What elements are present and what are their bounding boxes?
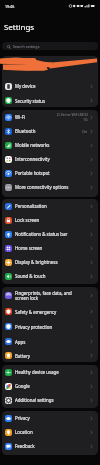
staticText: Lock screen [15,217,88,223]
button[interactable]: Safety & emergency [2,304,98,319]
staticText: Settings [4,22,35,33]
button[interactable]: Battery [2,348,98,362]
button[interactable]: Security status [2,93,98,107]
staticText: Safety & emergency [15,309,88,315]
staticText: Location [15,429,88,435]
button[interactable]: My device [2,79,98,93]
staticText: 1G [83,117,88,122]
staticText: Notifications & status bar [15,231,88,237]
staticText: Privacy [15,415,88,421]
button[interactable]: Lock screen [2,213,98,227]
staticText: Personalization [15,203,88,209]
button[interactable]: Privacy [2,411,98,425]
staticText: Fingerprints, face data, and screen lock [15,290,88,302]
staticText: My device [15,83,88,89]
button[interactable]: Location [2,425,98,439]
button[interactable]: Personalization [2,199,98,213]
staticText: Sound & touch [15,273,88,279]
staticText: Google [15,383,88,389]
staticText: Mobile networks [15,142,88,148]
button[interactable]: Sound & touch [2,269,98,283]
button[interactable]: Apps [2,334,98,349]
staticText: Interconnectivity [15,156,88,162]
button[interactable]: Google [2,379,98,393]
staticText: Battery [15,353,88,359]
button[interactable]: Fingerprints, face data, and screen lock [2,287,98,304]
button[interactable]: Notifications & status bar [2,227,98,241]
staticText: Additional settings [15,397,88,403]
staticText: Privacy protection [15,324,88,330]
button[interactable]: Search settings [2,42,98,50]
button[interactable] [2,56,98,79]
staticText: Display & brightness [15,259,88,265]
button[interactable]: Additional settings [2,393,98,407]
button[interactable]: Home screen [2,241,98,255]
button[interactable]: Interconnectivity [2,152,98,166]
staticText: Apps [15,339,88,345]
button[interactable]: Privacy protection [2,319,98,334]
staticText: D-Verne WiFi BE32 [57,112,88,117]
button[interactable]: Mobile networks [2,138,98,152]
staticText: 19:46 [5,4,15,9]
button[interactable]: Bluetooth [2,124,98,138]
staticText: Portable hotspot [15,170,88,176]
staticText: Security status [15,98,88,104]
staticText: Bluetooth [15,128,81,134]
button[interactable]: Display & brightness [2,255,98,269]
staticText: On [82,129,88,134]
button[interactable]: Portable hotspot [2,166,98,180]
staticText: Search settings [13,44,40,49]
staticText: More connectivity options [15,184,88,190]
staticText: Wi-Fi [15,114,56,120]
staticText: Feedback [15,443,88,449]
button[interactable]: More connectivity options [2,180,98,194]
button[interactable]: Wi-Fi [2,110,98,124]
staticText: Healthy device usage [15,369,88,375]
button[interactable]: Feedback [2,439,98,453]
button[interactable]: Healthy device usage [2,365,98,379]
staticText: Home screen [15,245,88,251]
